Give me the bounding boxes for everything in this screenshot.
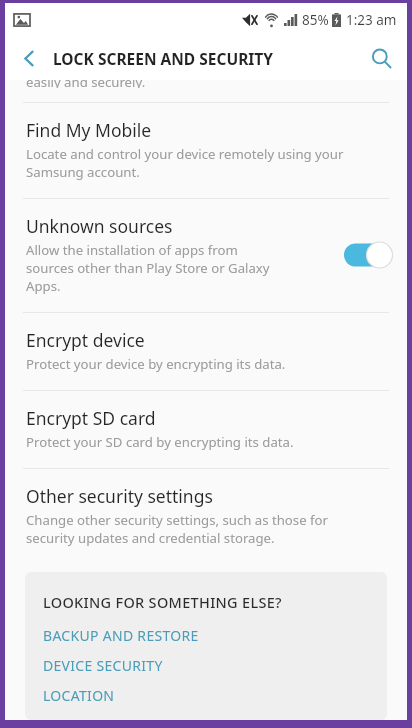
staticText: Encrypt device [26, 328, 145, 352]
button[interactable]: Unknown sources toggle [335, 241, 391, 269]
staticText: Other security settings [26, 484, 213, 508]
staticText: 85% [302, 11, 329, 29]
button[interactable]: Encrypt SD card [5, 391, 407, 468]
staticText: LOCATION [43, 686, 115, 702]
staticText: Encrypt SD card [26, 406, 156, 430]
button[interactable]: Unknown sources [5, 199, 407, 312]
button[interactable]: LOCATION [43, 686, 371, 702]
staticText: Locate and control your device remotely … [26, 145, 373, 181]
staticText: LOOKING FOR SOMETHING ELSE? [43, 592, 282, 612]
staticText: Unknown sources [26, 214, 173, 238]
button[interactable]: Back [5, 36, 53, 80]
staticText: Protect your SD card by encrypting its d… [26, 433, 373, 451]
button[interactable]: Other security settings [5, 469, 407, 564]
staticText: LOCK SCREEN AND SECURITY [53, 48, 355, 69]
button[interactable]: Find My Mobile [5, 103, 407, 198]
button[interactable]: DEVICE SECURITY [43, 656, 371, 675]
button[interactable]: Encrypt device [5, 313, 407, 390]
staticText: Allow the installation of apps from sour… [26, 241, 273, 295]
staticText: Protect your device by encrypting its da… [26, 355, 373, 373]
staticText: BACKUP AND RESTORE [43, 626, 199, 645]
staticText: DEVICE SECURITY [43, 656, 163, 675]
button[interactable]: BACKUP AND RESTORE [43, 626, 371, 645]
staticText: 1:23 am [346, 11, 397, 29]
staticText: Change other security settings, such as … [26, 511, 373, 547]
button[interactable]: Search [355, 36, 407, 80]
staticText: Find My Mobile [26, 118, 152, 142]
staticText: easily and securely. [26, 80, 146, 88]
